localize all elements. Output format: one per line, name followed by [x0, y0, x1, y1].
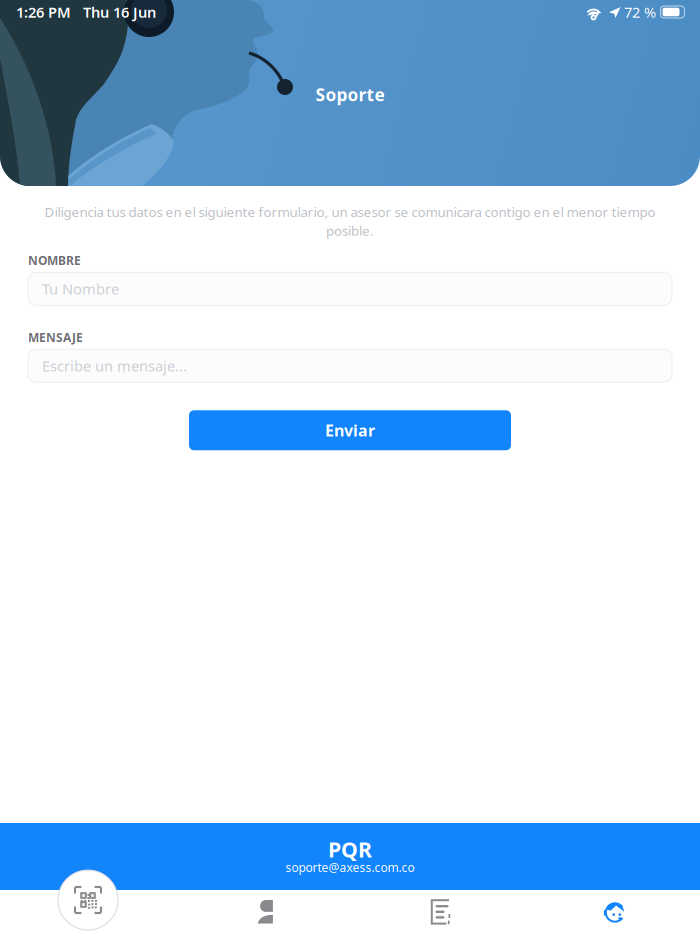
staticText: MENSAJE — [28, 329, 83, 345]
button[interactable]: Escanear — [0, 890, 175, 934]
button[interactable]: Documentos — [350, 890, 525, 934]
button[interactable]: Soporte — [525, 890, 700, 934]
button[interactable]: Enviar — [189, 410, 511, 450]
button[interactable]: Perfil — [175, 890, 350, 934]
staticText: Enviar — [325, 420, 375, 441]
staticText: 1:26 PM — [16, 2, 71, 22]
staticText: Tu Nombre — [42, 279, 119, 299]
staticText: posible. — [326, 222, 374, 239]
staticText: Soporte — [315, 83, 384, 106]
staticText: soporte@axess.com.co — [285, 859, 414, 875]
staticText: 72 % — [624, 2, 656, 22]
staticText: PQR — [328, 835, 372, 863]
staticText: Diligencia tus datos en el siguiente for… — [44, 203, 655, 221]
staticText: NOMBRE — [28, 252, 81, 268]
button[interactable]: Escanear QR — [58, 870, 118, 930]
staticText: Escribe un mensaje... — [42, 356, 187, 375]
staticText: Thu 16 Jun — [83, 2, 156, 22]
